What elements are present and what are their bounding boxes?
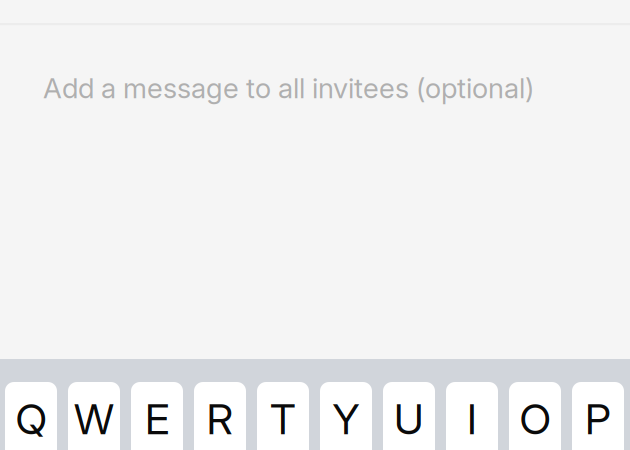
button[interactable]: O xyxy=(509,382,561,450)
button[interactable]: I xyxy=(446,382,498,450)
staticText: I xyxy=(467,394,477,444)
button[interactable]: Q xyxy=(5,382,57,450)
button[interactable]: U xyxy=(383,382,435,450)
staticText: Add a message to all invitees (optional) xyxy=(43,71,534,105)
staticText: T xyxy=(270,394,296,444)
staticText: O xyxy=(519,394,550,444)
button[interactable]: R xyxy=(194,382,246,450)
staticText: E xyxy=(145,394,169,444)
button[interactable]: W xyxy=(68,382,120,450)
staticText: R xyxy=(206,394,233,444)
staticText: Q xyxy=(15,394,46,444)
button[interactable]: T xyxy=(257,382,309,450)
staticText: W xyxy=(74,394,114,444)
button[interactable]: Y xyxy=(320,382,372,450)
button[interactable]: P xyxy=(572,382,624,450)
staticText: U xyxy=(394,394,424,444)
staticText: P xyxy=(585,394,611,444)
button[interactable]: E xyxy=(131,382,183,450)
button[interactable]: Add a message to all invitees (optional) xyxy=(0,25,630,359)
staticText: Y xyxy=(332,394,359,444)
